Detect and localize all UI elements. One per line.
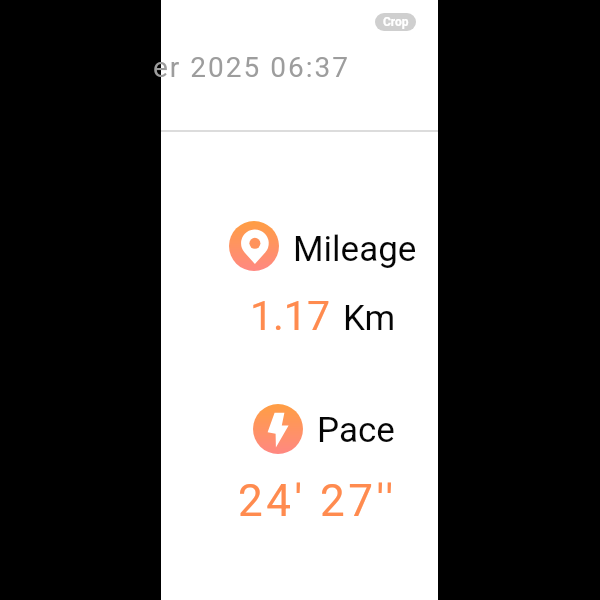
button[interactable]: Pace (161, 395, 438, 525)
staticText: 1.17 (250, 292, 330, 340)
staticText: er 2025 06:37 (153, 51, 350, 84)
staticText: 24' 27'' (238, 475, 397, 527)
button[interactable]: Mileage (161, 210, 438, 345)
button[interactable]: Crop (375, 13, 416, 31)
other: Pace (253, 404, 303, 454)
staticText: Km (343, 298, 396, 339)
other: Mileage (229, 221, 279, 271)
staticText: Crop (383, 15, 409, 29)
staticText: Mileage (293, 229, 417, 270)
staticText: Pace (317, 410, 395, 451)
